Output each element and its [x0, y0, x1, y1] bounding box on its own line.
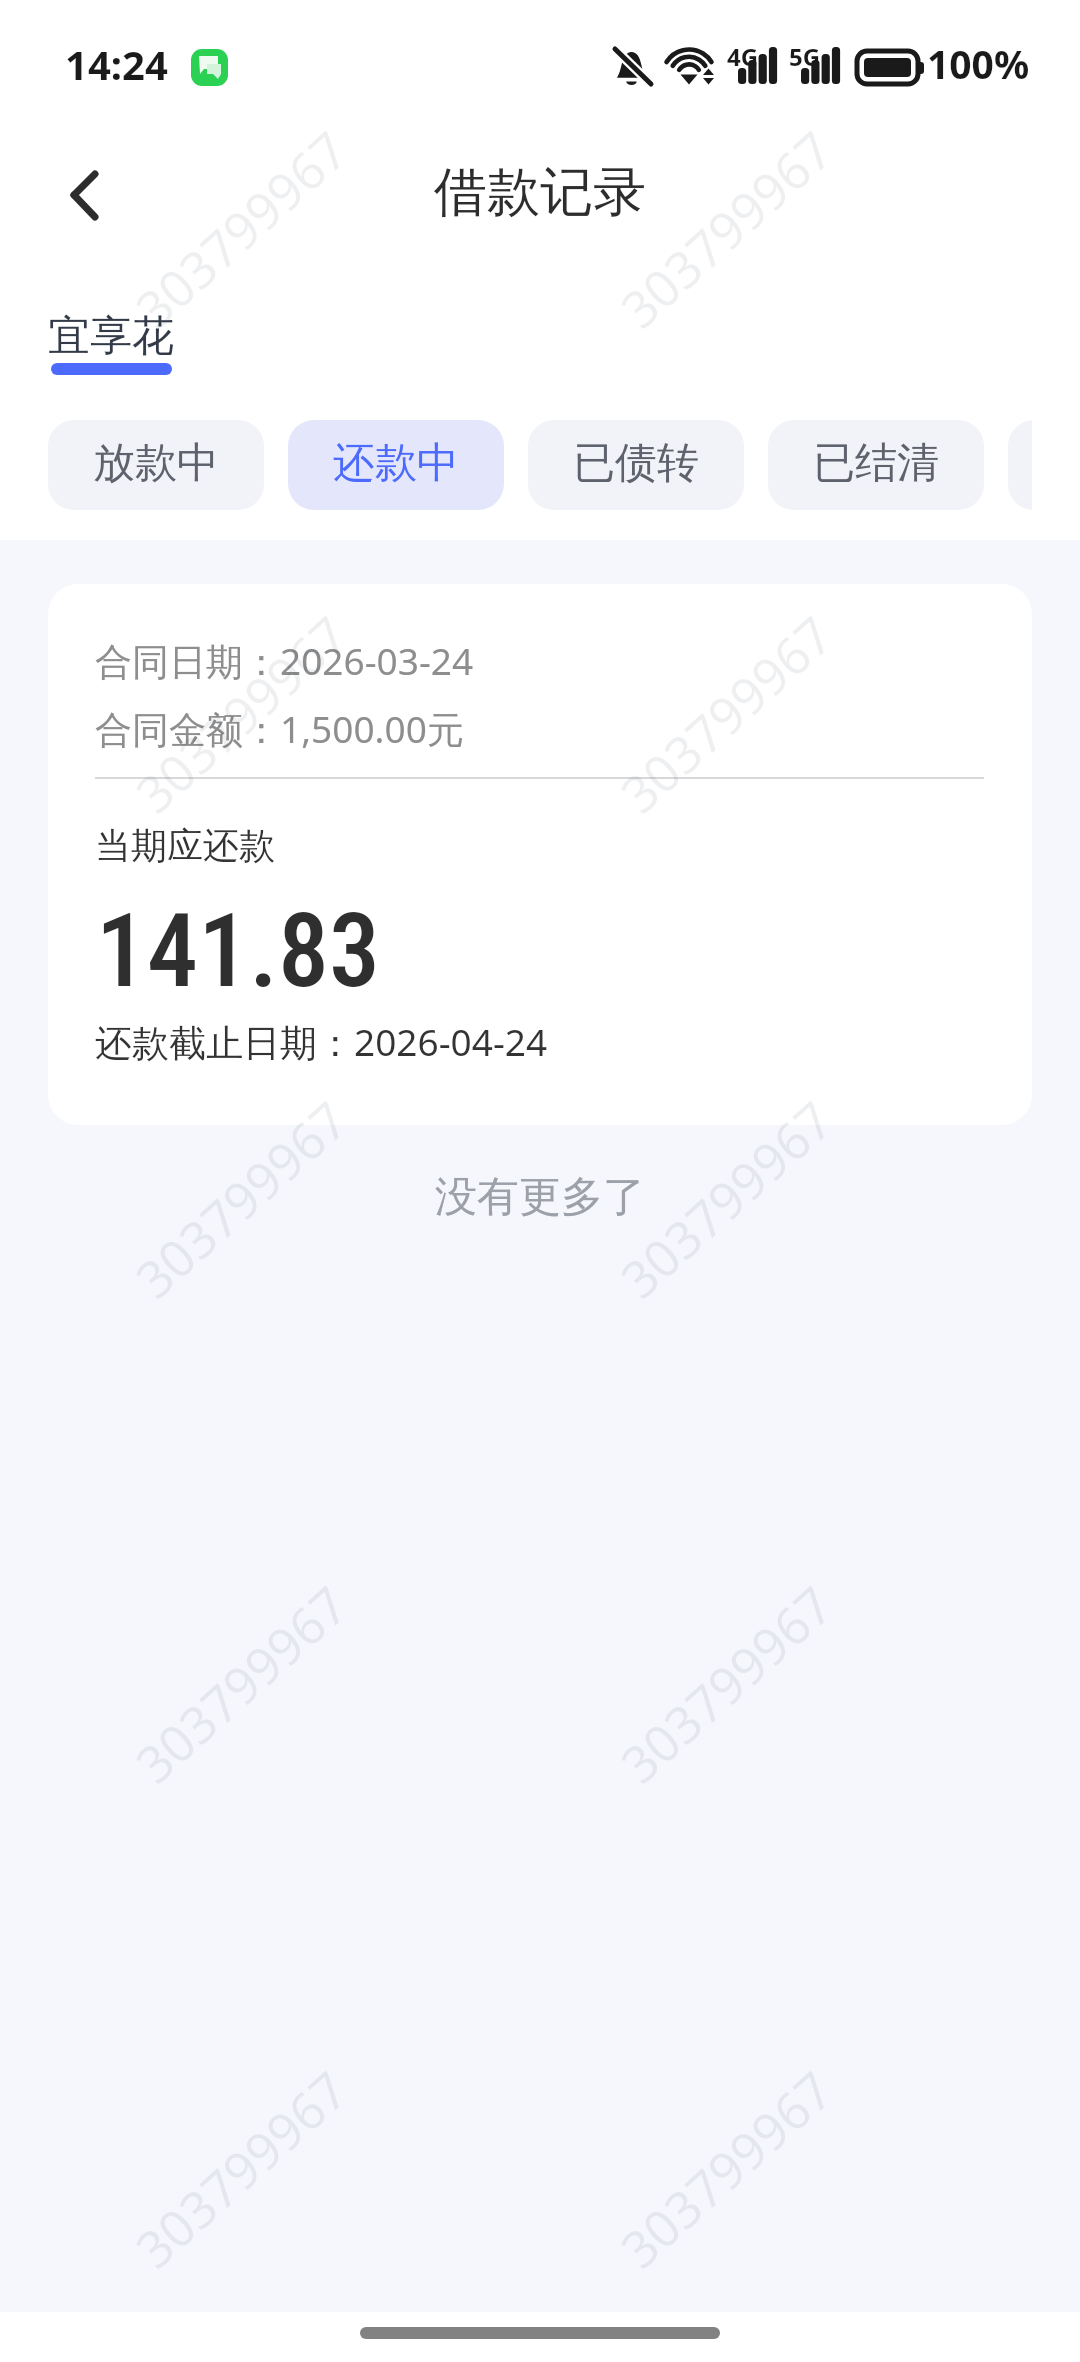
- staticText: 4G: [727, 40, 759, 73]
- button[interactable]: Back: [38, 144, 134, 240]
- button[interactable]: 放款中: [48, 420, 264, 510]
- staticText: 宜享花: [48, 310, 174, 363]
- staticText: 已债转: [573, 437, 699, 490]
- staticText: 14:24: [65, 37, 168, 91]
- staticText: 已结清: [813, 437, 939, 490]
- staticText: 没有更多了: [0, 1171, 1080, 1224]
- staticText: 100%: [927, 37, 1030, 90]
- staticText: 借款记录: [434, 159, 646, 226]
- button[interactable]: 宜享花: [48, 310, 174, 375]
- staticText: 合同金额：1,500.00元: [95, 703, 464, 754]
- button[interactable]: 已逾期: [1008, 420, 1032, 510]
- staticText: 5G: [789, 40, 821, 73]
- staticText: 还款中: [333, 437, 459, 490]
- staticText: 放款中: [93, 437, 219, 490]
- staticText: 141.83: [96, 891, 381, 1011]
- button[interactable]: 合同日期：2026-03-24: [48, 584, 1032, 1125]
- button[interactable]: 已债转: [528, 420, 744, 510]
- staticText: 还款截止日期：2026-04-24: [95, 1016, 548, 1067]
- button[interactable]: 已结清: [768, 420, 984, 510]
- staticText: 当期应还款: [95, 823, 275, 868]
- staticText: 合同日期：2026-03-24: [95, 635, 474, 686]
- button[interactable]: 还款中: [288, 420, 504, 510]
